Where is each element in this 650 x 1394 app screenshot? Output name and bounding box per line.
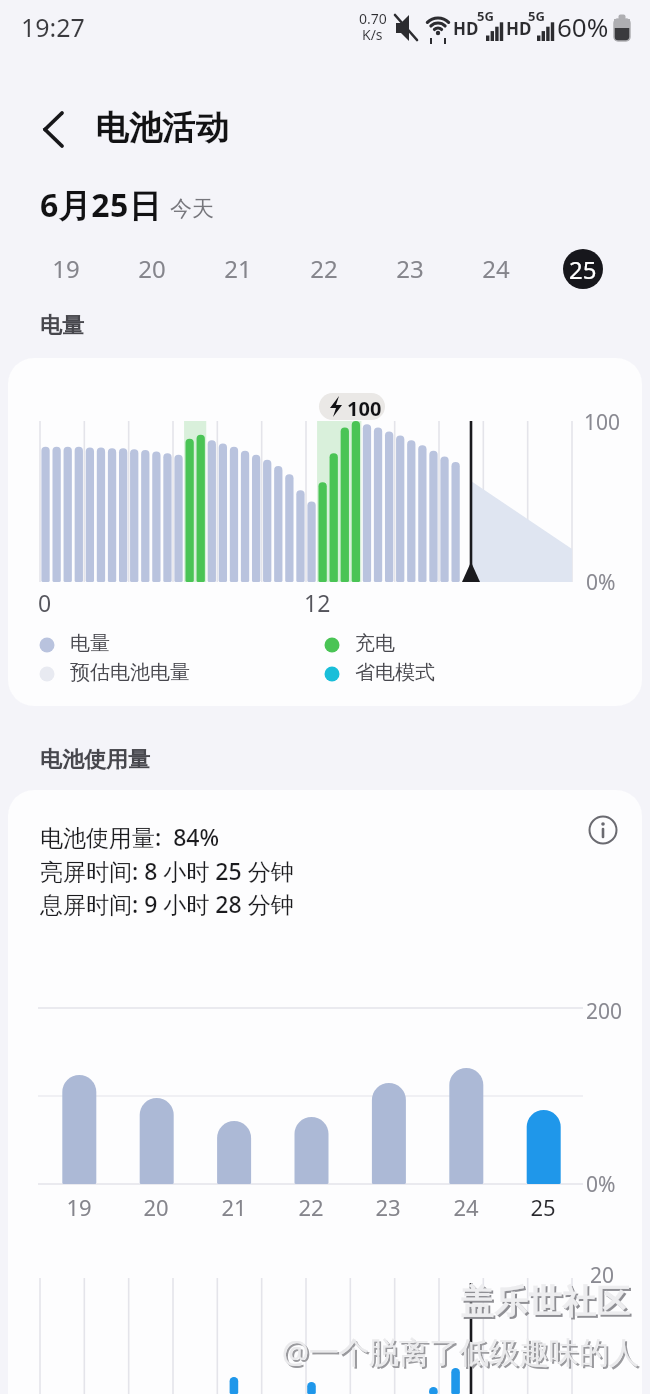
staticText: 盖乐世社区	[460, 1281, 630, 1323]
staticText: 100	[347, 395, 382, 422]
staticText: 息屏时间: 9 小时 28 分钟	[40, 888, 294, 919]
staticText: 25	[530, 1192, 556, 1222]
staticText: 电量	[70, 631, 110, 656]
staticText: 0	[38, 587, 52, 618]
staticText: 预估电池电量	[70, 660, 190, 685]
staticText: 0%	[586, 1170, 616, 1199]
button[interactable]: 21	[214, 252, 262, 285]
button[interactable]	[34, 104, 80, 154]
staticText: @一个脱离了低级趣味的人	[282, 1331, 639, 1372]
staticText: 盖乐世社区	[462, 1283, 632, 1325]
staticText: HD	[453, 17, 479, 40]
staticText: 亮屏时间: 8 小时 25 分钟	[40, 855, 294, 886]
staticText: 24	[482, 252, 510, 285]
staticText: 电量	[40, 312, 84, 340]
button[interactable]: 22	[300, 252, 348, 285]
staticText: 电池使用量: 84%	[40, 821, 220, 852]
staticText: 电池活动	[95, 107, 229, 149]
staticText: 充电	[355, 631, 395, 656]
staticText: 25	[569, 253, 597, 286]
staticText: 省电模式	[355, 660, 435, 685]
staticText: HD	[506, 17, 532, 40]
staticText: 19	[52, 252, 80, 285]
staticText: 20	[590, 1261, 615, 1290]
staticText: 5G	[528, 7, 545, 25]
staticText: 60%	[557, 9, 609, 44]
staticText: 21	[224, 252, 252, 285]
staticText: 20	[143, 1192, 169, 1222]
staticText: 19:27	[21, 10, 85, 44]
staticText: 20	[138, 252, 166, 285]
staticText: 12	[304, 587, 331, 618]
staticText: 21	[221, 1192, 247, 1222]
staticText: 24	[453, 1192, 479, 1222]
staticText: 今天	[170, 195, 214, 223]
staticText: 22	[298, 1192, 324, 1222]
staticText: 5G	[477, 7, 494, 25]
staticText: 200	[586, 997, 623, 1026]
button[interactable]: 19	[42, 252, 90, 285]
staticText: 6月25日	[40, 183, 162, 227]
staticText: 23	[375, 1192, 401, 1222]
staticText: 电池使用量	[40, 746, 150, 774]
staticText: 0%	[586, 568, 616, 597]
staticText: K/s	[362, 25, 383, 44]
button[interactable]: 23	[386, 252, 434, 285]
button[interactable]: 20	[128, 252, 176, 285]
button[interactable]: 25	[563, 249, 603, 289]
staticText: 23	[396, 252, 424, 285]
staticText: 22	[310, 252, 338, 285]
staticText: 0.70	[359, 9, 387, 28]
button[interactable]	[585, 812, 621, 848]
button[interactable]: 24	[472, 252, 520, 285]
staticText: @一个脱离了低级趣味的人	[284, 1333, 641, 1374]
staticText: 100	[584, 408, 621, 437]
staticText: 19	[66, 1192, 92, 1222]
